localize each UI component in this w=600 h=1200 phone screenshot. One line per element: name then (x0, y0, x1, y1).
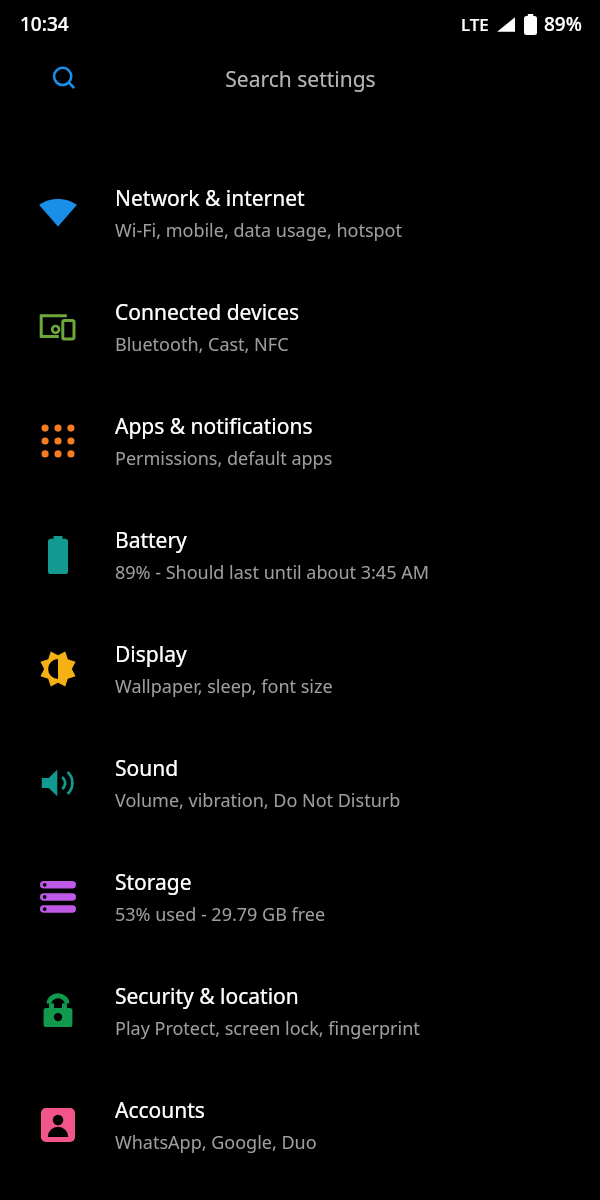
staticText: Accounts (115, 1096, 205, 1125)
staticText: Wi-Fi, mobile, data usage, hotspot (115, 218, 403, 243)
button[interactable]: Display (0, 612, 600, 726)
button[interactable]: Search (0, 48, 600, 110)
staticText: Apps & notifications (115, 412, 313, 441)
staticText: 10:34 (20, 11, 69, 37)
button[interactable]: Security & location (0, 954, 600, 1068)
staticText: Security & location (115, 982, 299, 1011)
staticText: Battery (115, 526, 187, 555)
staticText: Volume, vibration, Do Not Disturb (115, 788, 401, 813)
staticText: 89% - Should last until about 3:45 AM (115, 560, 429, 585)
button[interactable]: Battery (0, 498, 600, 612)
staticText: Storage (115, 868, 192, 897)
staticText: Network & internet (115, 184, 305, 213)
staticText: Connected devices (115, 298, 300, 327)
button[interactable]: Accounts (0, 1068, 600, 1182)
staticText: Play Protect, screen lock, fingerprint (115, 1016, 420, 1041)
staticText: LTE (461, 13, 489, 36)
other: Search (52, 66, 78, 92)
staticText: Display (115, 640, 187, 669)
staticText: Search settings (225, 65, 376, 94)
staticText: Sound (115, 754, 179, 783)
staticText: 53% used - 29.79 GB free (115, 902, 326, 927)
button[interactable]: Storage (0, 840, 600, 954)
staticText: WhatsApp, Google, Duo (115, 1130, 317, 1155)
button[interactable]: Sound (0, 726, 600, 840)
button[interactable]: Network & internet (0, 156, 600, 270)
button[interactable]: Connected devices (0, 270, 600, 384)
staticText: Bluetooth, Cast, NFC (115, 332, 289, 357)
staticText: Wallpaper, sleep, font size (115, 674, 333, 699)
button[interactable]: Apps & notifications (0, 384, 600, 498)
staticText: Permissions, default apps (115, 446, 333, 471)
staticText: 89% (544, 11, 582, 37)
